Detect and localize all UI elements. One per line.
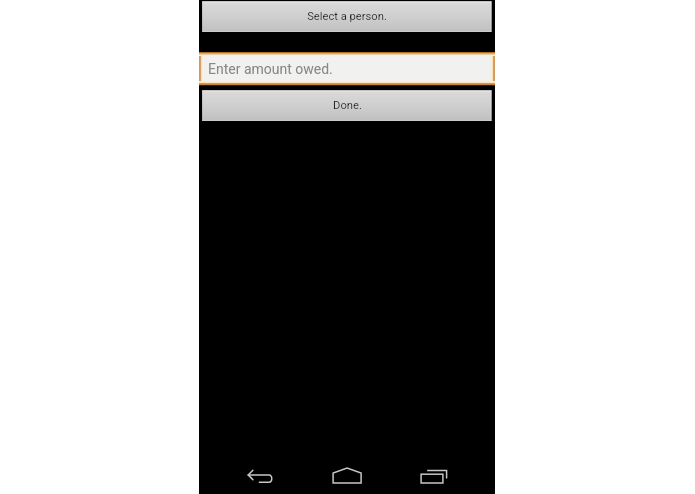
button[interactable]: Recent apps bbox=[416, 460, 450, 486]
staticText: Done. bbox=[333, 99, 362, 112]
button[interactable]: Home bbox=[329, 460, 363, 486]
staticText: Select a person. bbox=[307, 10, 387, 23]
button[interactable]: Enter amount owed. bbox=[199, 52, 495, 86]
button[interactable]: Back bbox=[244, 460, 278, 486]
button[interactable]: Select a person. bbox=[202, 1, 492, 32]
button[interactable]: Done. bbox=[202, 90, 492, 121]
staticText: Enter amount owed. bbox=[208, 61, 333, 77]
